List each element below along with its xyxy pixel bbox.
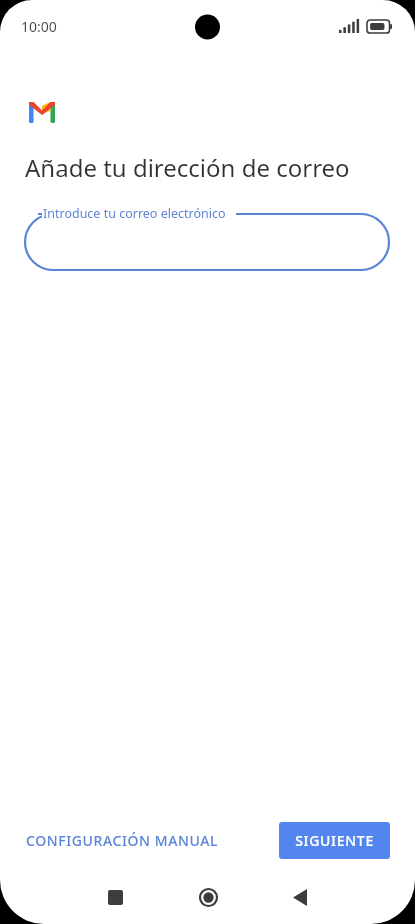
staticText: Introduce tu correo electrónico [43, 205, 226, 222]
button[interactable]: Home [186, 875, 230, 919]
staticText: Añade tu dirección de correo [25, 151, 350, 184]
button[interactable]: SIGUIENTE [279, 822, 390, 859]
staticText: SIGUIENTE [295, 831, 374, 850]
button[interactable] [0, 202, 415, 274]
button[interactable]: CONFIGURACIÓN MANUAL [18, 823, 227, 858]
staticText: 10:00 [21, 17, 57, 36]
button[interactable]: Recents [93, 875, 137, 919]
staticText: CONFIGURACIÓN MANUAL [26, 831, 219, 850]
button[interactable]: Back [278, 875, 322, 919]
